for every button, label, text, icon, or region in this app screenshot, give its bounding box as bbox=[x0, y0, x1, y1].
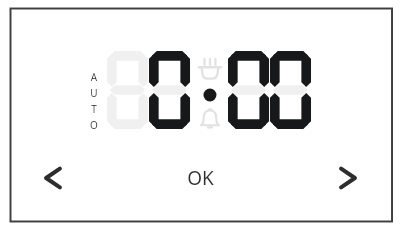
staticText: T bbox=[86, 102, 102, 116]
staticText: OK bbox=[187, 165, 214, 191]
staticText: O bbox=[86, 118, 102, 132]
staticText: U bbox=[86, 86, 102, 100]
button[interactable]: Next bbox=[321, 157, 375, 199]
staticText: A bbox=[86, 70, 102, 84]
button[interactable]: OK bbox=[80, 157, 321, 199]
button[interactable]: Previous bbox=[26, 157, 80, 199]
